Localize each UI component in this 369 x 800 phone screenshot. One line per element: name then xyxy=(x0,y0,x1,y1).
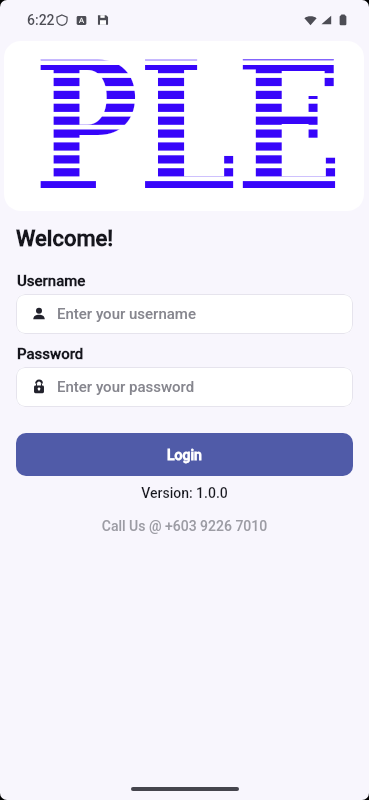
staticText: Enter your password xyxy=(57,378,195,396)
staticText: Login xyxy=(167,447,202,463)
staticText: Username xyxy=(17,272,86,290)
staticText: Password xyxy=(17,345,84,363)
staticText: PLE xyxy=(34,41,343,211)
button[interactable]: Enter your password xyxy=(16,367,353,407)
button[interactable]: Call Us @ +603 9226 7010 xyxy=(0,518,369,534)
staticText: 6:22 xyxy=(27,12,55,28)
button[interactable]: Login xyxy=(16,433,353,476)
button[interactable]: Enter your username xyxy=(16,294,353,334)
staticText: Welcome! xyxy=(16,226,114,252)
staticText: Version: 1.0.0 xyxy=(0,485,369,501)
staticText: Enter your username xyxy=(57,305,196,323)
